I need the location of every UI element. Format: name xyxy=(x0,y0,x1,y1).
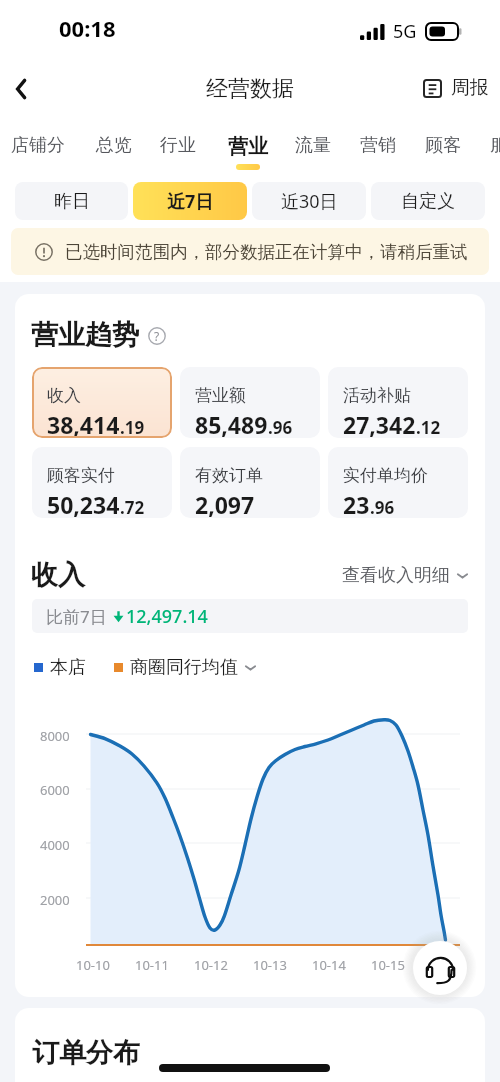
staticText: 订单分布 xyxy=(32,1036,140,1070)
staticText: 自定义 xyxy=(401,190,455,213)
staticText: 5G xyxy=(393,19,417,44)
staticText: ? xyxy=(154,328,160,344)
staticText: 2,097 xyxy=(195,489,255,518)
staticText: 有效订单 xyxy=(195,465,263,486)
staticText: 8000 xyxy=(40,727,70,745)
staticText: .72 xyxy=(120,496,145,518)
staticText: 6000 xyxy=(40,781,70,799)
staticText: 昨日 xyxy=(54,190,90,213)
staticText: 2000 xyxy=(40,891,70,909)
button[interactable]: 周报 xyxy=(423,76,489,100)
staticText: 流量 xyxy=(295,134,331,157)
staticText: 已选时间范围内，部分数据正在计算中，请稍后重试 xyxy=(65,241,468,263)
staticText: 10-15 xyxy=(371,956,405,974)
button[interactable]: 营业 xyxy=(228,134,268,170)
button[interactable]: 店铺分 xyxy=(11,134,65,157)
staticText: .12 xyxy=(416,416,441,438)
staticText: 查看收入明细 xyxy=(342,564,450,587)
button[interactable]: 昨日 xyxy=(15,182,128,220)
staticText: 实付单均价 xyxy=(343,465,428,486)
staticText: 行业 xyxy=(160,134,196,157)
staticText: 周报 xyxy=(451,76,489,100)
staticText: 营业额 xyxy=(195,385,246,406)
staticText: 10-12 xyxy=(194,956,228,974)
staticText: 比前7日 xyxy=(46,605,107,628)
staticText: 顾客实付 xyxy=(47,465,115,486)
staticText: 10-13 xyxy=(253,956,287,974)
button[interactable]: Customer service xyxy=(413,941,467,995)
staticText: 4000 xyxy=(40,836,70,854)
button[interactable]: 有效订单 xyxy=(180,447,320,518)
staticText: 营销 xyxy=(360,134,396,157)
button[interactable]: 顾客实付 xyxy=(32,447,172,518)
button[interactable]: 近30日 xyxy=(252,182,366,220)
staticText: 27,342 xyxy=(343,409,416,438)
button[interactable]: 实付单均价 xyxy=(328,447,468,518)
staticText: 收入 xyxy=(31,558,85,592)
staticText: 38,414 xyxy=(47,409,120,438)
staticText: 收入 xyxy=(47,385,81,406)
button[interactable]: 活动补贴 xyxy=(328,367,468,438)
staticText: 50,234 xyxy=(47,489,120,518)
staticText: 经营数据 xyxy=(206,75,294,103)
button[interactable]: 流量 xyxy=(295,134,331,157)
staticText: 营业 xyxy=(228,134,268,159)
staticText: 服 xyxy=(490,134,500,157)
staticText: 10-10 xyxy=(76,956,110,974)
staticText: 活动补贴 xyxy=(343,385,411,406)
button[interactable]: Back xyxy=(0,66,46,112)
staticText: 本店 xyxy=(50,656,86,679)
staticText: .96 xyxy=(370,496,395,518)
staticText: 10-11 xyxy=(135,956,169,974)
button[interactable]: 行业 xyxy=(160,134,196,157)
staticText: 近30日 xyxy=(281,189,338,214)
staticText: 营业趋势 xyxy=(31,318,139,352)
button[interactable]: 营销 xyxy=(360,134,396,157)
button[interactable]: 营业额 xyxy=(180,367,320,438)
staticText: 85,489 xyxy=(195,409,268,438)
staticText: .96 xyxy=(268,416,293,438)
staticText: 顾客 xyxy=(425,134,461,157)
staticText: 商圈同行均值 xyxy=(130,656,238,679)
button[interactable]: 自定义 xyxy=(371,182,485,220)
button[interactable]: 收入 xyxy=(32,367,172,438)
staticText: 10-14 xyxy=(312,956,346,974)
button[interactable]: 总览 xyxy=(96,134,132,157)
staticText: .19 xyxy=(120,416,145,438)
button[interactable]: 服 xyxy=(490,134,500,157)
staticText: 12,497.14 xyxy=(126,604,208,629)
staticText: 近7日 xyxy=(167,189,214,214)
staticText: 23 xyxy=(343,489,370,518)
button[interactable]: Info xyxy=(147,326,166,345)
button[interactable]: 商圈同行均值 xyxy=(114,656,257,679)
staticText: 总览 xyxy=(96,134,132,157)
button[interactable]: 近7日 xyxy=(133,182,247,220)
staticText: 00:18 xyxy=(59,13,116,43)
button[interactable]: 顾客 xyxy=(425,134,461,157)
button[interactable]: 查看收入明细 xyxy=(342,564,469,587)
staticText: 店铺分 xyxy=(11,134,65,157)
